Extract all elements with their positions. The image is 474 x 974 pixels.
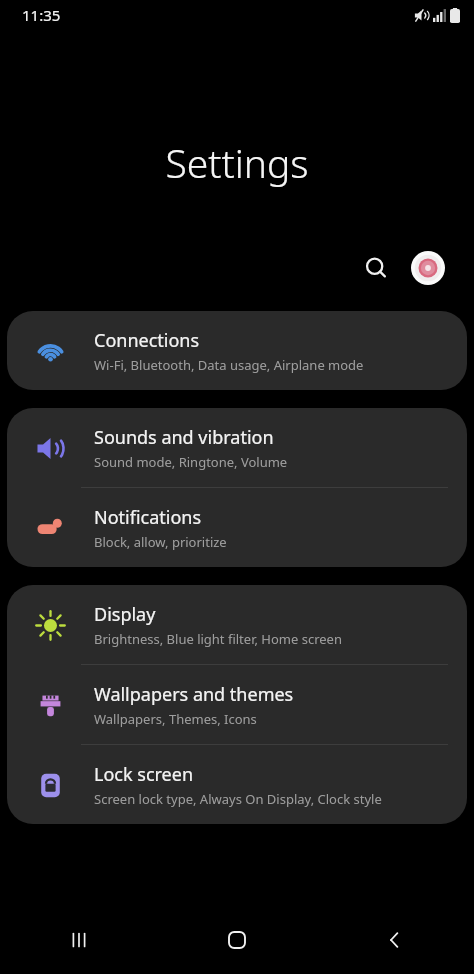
button[interactable]: Recents xyxy=(0,905,158,974)
button[interactable]: Notifications xyxy=(7,488,467,567)
button[interactable]: Search xyxy=(354,246,398,290)
staticText: Wi-Fi, Bluetooth, Data usage, Airplane m… xyxy=(94,356,364,374)
staticText: Brightness, Blue light filter, Home scre… xyxy=(94,630,342,648)
staticText: Lock screen xyxy=(94,762,194,787)
staticText: Wallpapers and themes xyxy=(94,682,294,707)
staticText: Settings xyxy=(165,136,309,189)
button[interactable]: Display xyxy=(7,585,467,664)
staticText: Connections xyxy=(94,328,200,353)
button[interactable]: Lock screen xyxy=(7,745,467,824)
staticText: Sounds and vibration xyxy=(94,425,274,450)
button[interactable]: Wallpapers and themes xyxy=(7,665,467,744)
staticText: Screen lock type, Always On Display, Clo… xyxy=(94,790,382,808)
button[interactable]: Home xyxy=(158,905,316,974)
button[interactable]: Connections xyxy=(7,311,467,390)
staticText: Block, allow, prioritize xyxy=(94,533,227,551)
staticText: Display xyxy=(94,602,156,627)
staticText: Sound mode, Ringtone, Volume xyxy=(94,453,288,471)
staticText: 11:35 xyxy=(22,5,61,25)
button[interactable]: Back xyxy=(316,905,474,974)
staticText: Wallpapers, Themes, Icons xyxy=(94,710,257,728)
button[interactable]: Account xyxy=(406,246,450,290)
staticText: Notifications xyxy=(94,505,202,530)
button[interactable]: Sounds and vibration xyxy=(7,408,467,487)
